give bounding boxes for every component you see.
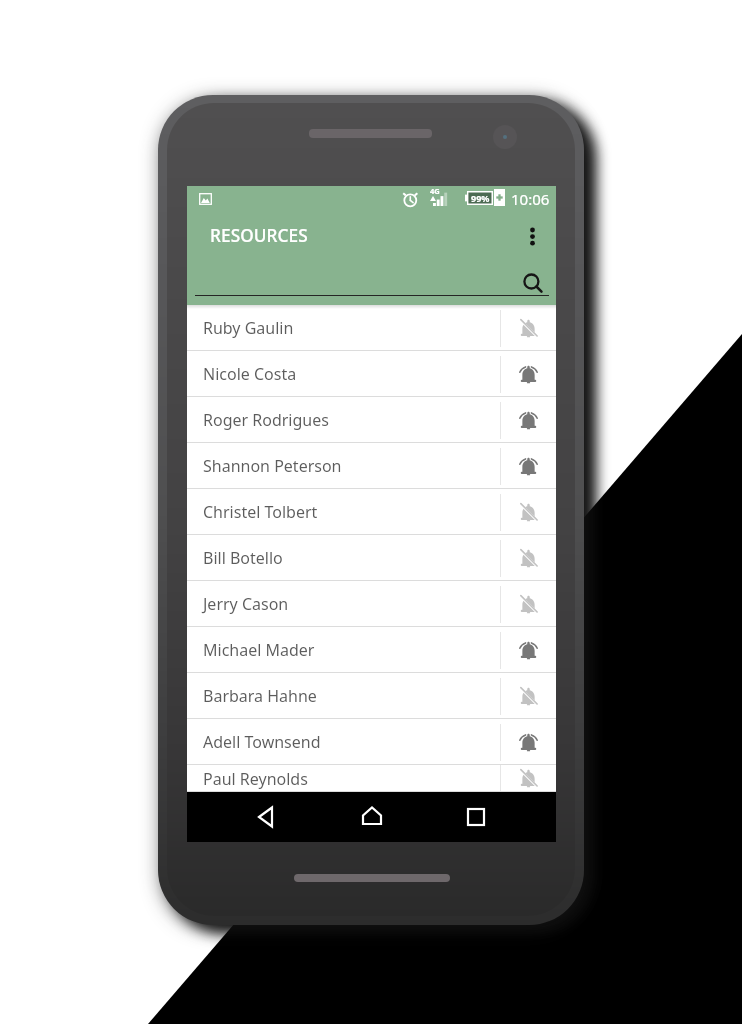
- staticText: Jerry Cason: [203, 593, 289, 615]
- staticText: Bill Botello: [203, 547, 283, 569]
- staticText: Ruby Gaulin: [203, 317, 294, 339]
- staticText: Michael Mader: [203, 639, 315, 661]
- button[interactable]: Paul Reynolds: [187, 765, 556, 792]
- staticText: Shannon Peterson: [203, 455, 342, 477]
- staticText: Roger Rodrigues: [203, 409, 329, 431]
- button[interactable]: Adell Townsend: [187, 719, 556, 765]
- button[interactable]: Roger Rodrigues: [187, 397, 556, 443]
- button[interactable]: Home: [348, 793, 396, 841]
- button[interactable]: Bill Botello: [187, 535, 556, 581]
- staticText: Christel Tolbert: [203, 501, 318, 523]
- staticText: Barbara Hahne: [203, 685, 317, 707]
- button[interactable]: More options: [511, 217, 553, 259]
- staticText: Adell Townsend: [203, 731, 321, 753]
- staticText: Paul Reynolds: [203, 768, 308, 790]
- button[interactable]: Back: [243, 793, 291, 841]
- staticText: 10:06: [511, 189, 550, 209]
- staticText: Nicole Costa: [203, 363, 297, 385]
- button[interactable]: Nicole Costa: [187, 351, 556, 397]
- button[interactable]: Jerry Cason: [187, 581, 556, 627]
- staticText: 4G: [430, 186, 440, 196]
- button[interactable]: Christel Tolbert: [187, 489, 556, 535]
- staticText: RESOURCES: [210, 224, 308, 247]
- button[interactable]: Search: [515, 264, 551, 300]
- button[interactable]: Ruby Gaulin: [187, 305, 556, 351]
- staticText: 99%: [471, 192, 490, 204]
- button[interactable]: Barbara Hahne: [187, 673, 556, 719]
- button[interactable]: Michael Mader: [187, 627, 556, 673]
- button[interactable]: Recents: [452, 793, 500, 841]
- button[interactable]: Shannon Peterson: [187, 443, 556, 489]
